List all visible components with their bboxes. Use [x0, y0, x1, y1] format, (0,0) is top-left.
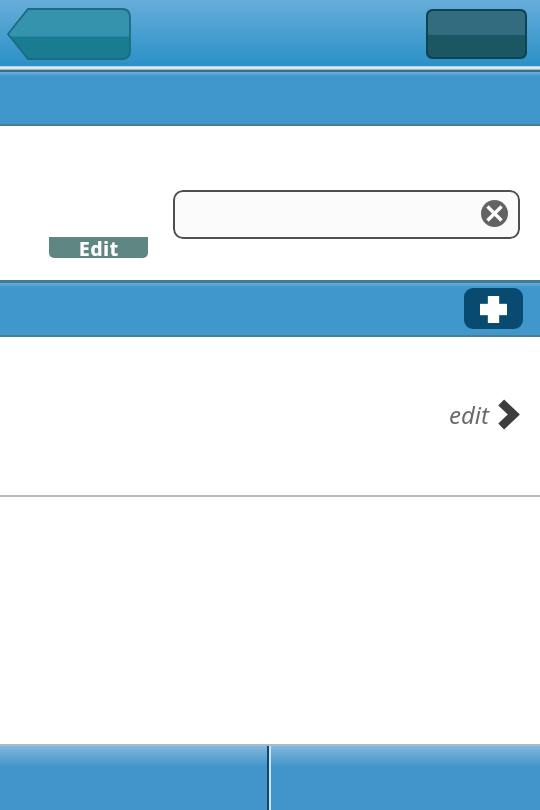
button[interactable]: Action — [426, 9, 527, 59]
staticText: edit — [449, 398, 490, 431]
button[interactable]: Tab two — [271, 746, 540, 810]
staticText: Edit — [79, 237, 119, 257]
button[interactable] — [173, 190, 520, 239]
button[interactable]: Edit — [49, 237, 148, 258]
button[interactable]: Tab one — [0, 746, 267, 810]
button[interactable]: Add — [464, 288, 523, 329]
button[interactable]: Back — [7, 9, 130, 59]
button[interactable]: edit — [0, 337, 540, 494]
button[interactable]: Clear text — [481, 200, 508, 227]
